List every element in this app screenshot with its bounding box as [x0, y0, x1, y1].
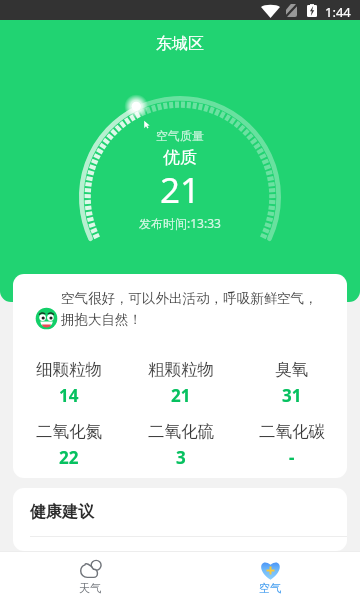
- staticText: 21: [160, 166, 201, 214]
- staticText: -: [289, 446, 295, 469]
- staticText: 发布时间:13:33: [139, 215, 221, 231]
- staticText: 31: [282, 384, 302, 407]
- staticText: 东城区: [156, 34, 204, 54]
- staticText: 空气质量: [156, 128, 204, 143]
- staticText: 空气: [259, 581, 281, 595]
- button[interactable]: 臭氧: [236, 359, 347, 407]
- button[interactable]: 天气: [0, 551, 180, 600]
- button[interactable]: 二氧化氮: [13, 421, 125, 469]
- staticText: 拥抱大自然！: [61, 311, 142, 328]
- button[interactable]: 二氧化硫: [125, 421, 236, 469]
- staticText: 22: [59, 446, 79, 469]
- button[interactable]: 二氧化碳: [236, 421, 347, 469]
- staticText: 二氧化碳: [259, 421, 325, 442]
- staticText: 臭氧: [275, 359, 308, 380]
- staticText: 细颗粒物: [36, 359, 102, 380]
- staticText: 3: [176, 446, 186, 469]
- button[interactable]: 细颗粒物: [13, 359, 125, 407]
- staticText: 21: [171, 384, 191, 407]
- staticText: 优质: [163, 147, 197, 168]
- button[interactable]: 空气: [180, 551, 360, 600]
- staticText: 粗颗粒物: [148, 359, 214, 380]
- staticText: 二氧化硫: [148, 421, 214, 442]
- staticText: 空气很好，可以外出活动，呼吸新鲜空气，: [61, 290, 318, 307]
- staticText: 1:44: [325, 3, 351, 21]
- staticText: 健康建议: [30, 502, 94, 522]
- button[interactable]: 粗颗粒物: [125, 359, 236, 407]
- staticText: 天气: [79, 581, 101, 595]
- staticText: 14: [59, 384, 79, 407]
- staticText: 二氧化氮: [36, 421, 102, 442]
